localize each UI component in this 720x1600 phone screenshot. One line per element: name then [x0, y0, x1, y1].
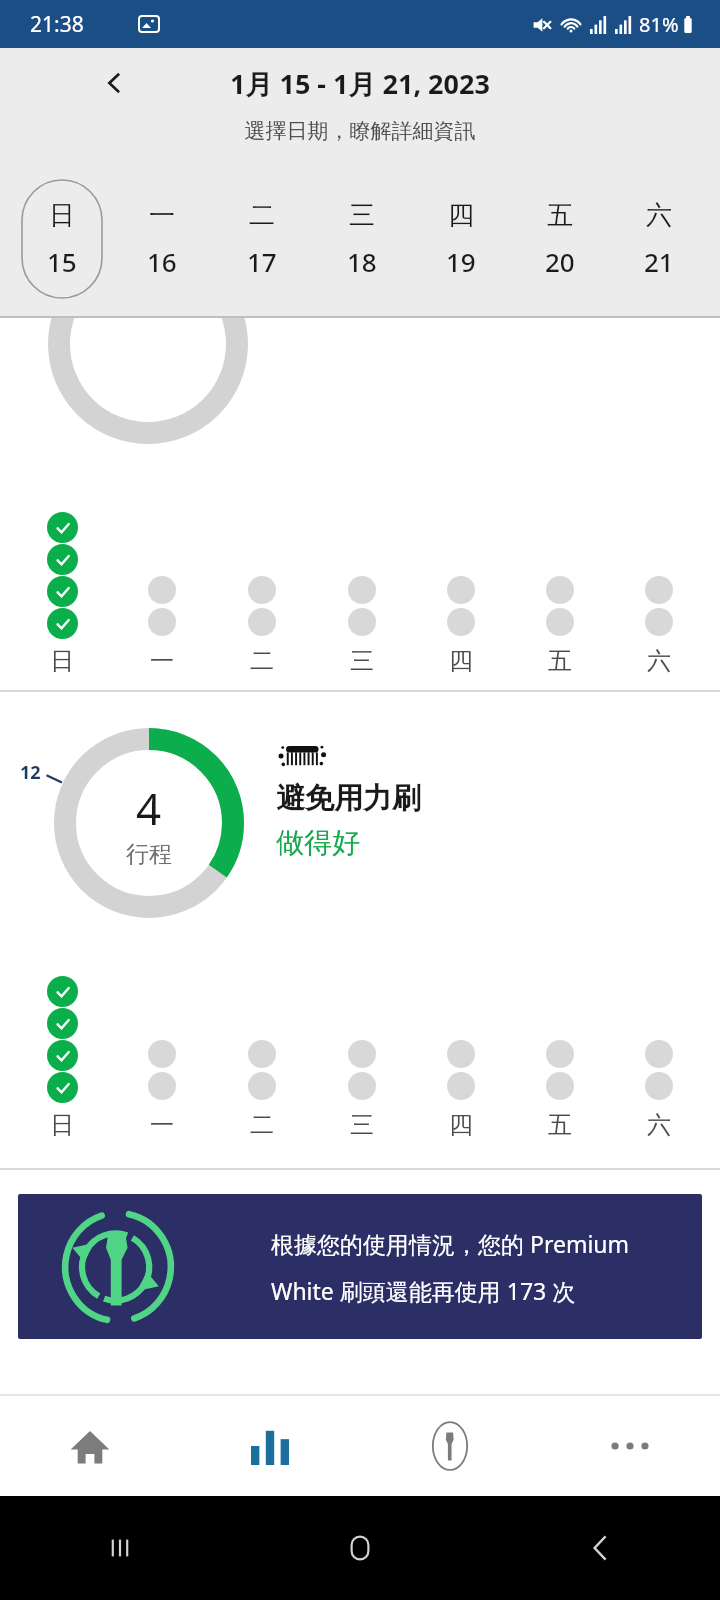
staticText: 16	[147, 244, 177, 279]
staticText: 五	[547, 199, 573, 232]
button[interactable]: 五	[510, 180, 609, 298]
staticText: 1月 15 - 1月 21, 2023	[230, 65, 490, 102]
staticText: 12	[20, 760, 41, 785]
staticText: 四	[448, 199, 474, 232]
staticText: 三	[349, 199, 375, 232]
staticText: 二	[250, 1110, 274, 1140]
staticText: 五	[548, 1110, 572, 1140]
staticText: 20	[545, 244, 575, 279]
staticText: 4	[136, 778, 162, 838]
staticText: 二	[249, 199, 275, 232]
button[interactable]: Recents	[0, 1496, 240, 1600]
button[interactable]: 日	[12, 180, 112, 298]
staticText: 避免用力刷	[276, 780, 421, 817]
staticText: 五	[548, 646, 572, 676]
button[interactable]: Statistics	[180, 1396, 360, 1496]
staticText: 18	[347, 244, 377, 279]
staticText: 二	[250, 646, 274, 676]
staticText: 15	[47, 244, 77, 279]
button[interactable]: 六	[609, 180, 708, 298]
staticText: White 刷頭還能再使用 173 次	[271, 1275, 576, 1306]
staticText: 日	[49, 199, 75, 232]
staticText: 三	[350, 646, 374, 676]
button[interactable]: 二	[212, 180, 312, 298]
staticText: 根據您的使用情況，您的 Premium	[271, 1228, 630, 1259]
staticText: 六	[647, 1110, 671, 1140]
staticText: 一	[150, 646, 174, 676]
staticText: 行程	[126, 840, 172, 869]
staticText: 四	[449, 1110, 473, 1140]
staticText: 三	[350, 1110, 374, 1140]
button[interactable]: Home	[0, 1396, 180, 1496]
button[interactable]: Home	[240, 1496, 480, 1600]
staticText: 六	[646, 199, 672, 232]
staticText: 17	[247, 244, 277, 279]
staticText: 六	[647, 646, 671, 676]
staticText: 一	[149, 199, 175, 232]
staticText: 四	[449, 646, 473, 676]
button[interactable]: More	[540, 1396, 720, 1496]
staticText: 81%	[639, 11, 679, 38]
staticText: 日	[50, 1110, 74, 1140]
button[interactable]: 三	[312, 180, 411, 298]
staticText: 一	[150, 1110, 174, 1140]
staticText: 21:38	[30, 10, 84, 39]
staticText: 19	[446, 244, 476, 279]
staticText: 日	[50, 646, 74, 676]
button[interactable]: Back	[88, 57, 140, 109]
staticText: 做得好	[276, 825, 360, 860]
staticText: 21	[644, 244, 674, 279]
button[interactable]: 四	[411, 180, 510, 298]
button[interactable]: 一	[112, 180, 212, 298]
button[interactable]: 根據您的使用情況，您的 Premium	[18, 1194, 702, 1339]
staticText: 選擇日期，瞭解詳細資訊	[0, 118, 720, 144]
button[interactable]: Brush	[360, 1396, 540, 1496]
button[interactable]: Back	[480, 1496, 720, 1600]
